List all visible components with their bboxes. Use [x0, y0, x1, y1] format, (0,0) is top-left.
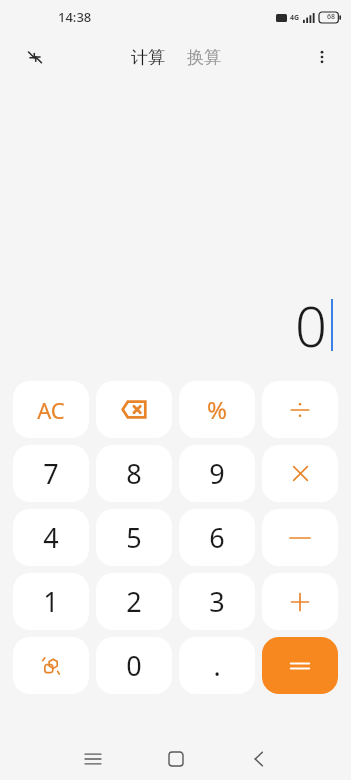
- button[interactable]: 5: [96, 509, 172, 566]
- staticText: AC: [37, 395, 65, 425]
- staticText: 8: [126, 455, 142, 492]
- button[interactable]: 计算: [125, 41, 171, 74]
- staticText: 4G: [290, 13, 300, 23]
- button[interactable]: 8: [96, 445, 172, 502]
- button[interactable]: 7: [13, 445, 89, 502]
- button[interactable]: Divide: [262, 381, 338, 438]
- button[interactable]: Collapse: [18, 40, 52, 74]
- button[interactable]: Plus: [262, 573, 338, 630]
- button[interactable]: Decimal point: [179, 637, 255, 694]
- staticText: .: [213, 647, 221, 684]
- staticText: 9: [209, 455, 225, 492]
- staticText: 2: [126, 583, 142, 620]
- button[interactable]: 2: [96, 573, 172, 630]
- button[interactable]: Backspace: [96, 381, 172, 438]
- button[interactable]: Back: [234, 738, 282, 780]
- button[interactable]: Recents: [69, 738, 117, 780]
- button[interactable]: Scientific: [13, 637, 89, 694]
- staticText: 3: [209, 583, 225, 620]
- staticText: 6: [209, 519, 225, 556]
- staticText: 0: [126, 647, 142, 684]
- staticText: 1: [43, 583, 59, 620]
- button[interactable]: 换算: [181, 41, 227, 74]
- button[interactable]: Multiply: [262, 445, 338, 502]
- button[interactable]: 1: [13, 573, 89, 630]
- button[interactable]: Equals: [262, 637, 338, 694]
- button[interactable]: 9: [179, 445, 255, 502]
- staticText: %: [207, 393, 227, 426]
- button[interactable]: 6: [179, 509, 255, 566]
- staticText: 7: [43, 455, 59, 492]
- staticText: 4: [43, 519, 59, 556]
- staticText: 计算: [131, 47, 165, 68]
- button[interactable]: Home: [152, 738, 200, 780]
- staticText: 5: [126, 519, 142, 556]
- button[interactable]: More options: [305, 40, 339, 74]
- button[interactable]: Minus: [262, 509, 338, 566]
- staticText: 0: [295, 287, 327, 363]
- button[interactable]: 4: [13, 509, 89, 566]
- button[interactable]: 3: [179, 573, 255, 630]
- staticText: 换算: [187, 47, 221, 68]
- button[interactable]: Percent: [179, 381, 255, 438]
- button[interactable]: AC: [13, 381, 89, 438]
- staticText: 14:38: [58, 8, 92, 26]
- staticText: 68: [327, 12, 336, 22]
- button[interactable]: 0: [96, 637, 172, 694]
